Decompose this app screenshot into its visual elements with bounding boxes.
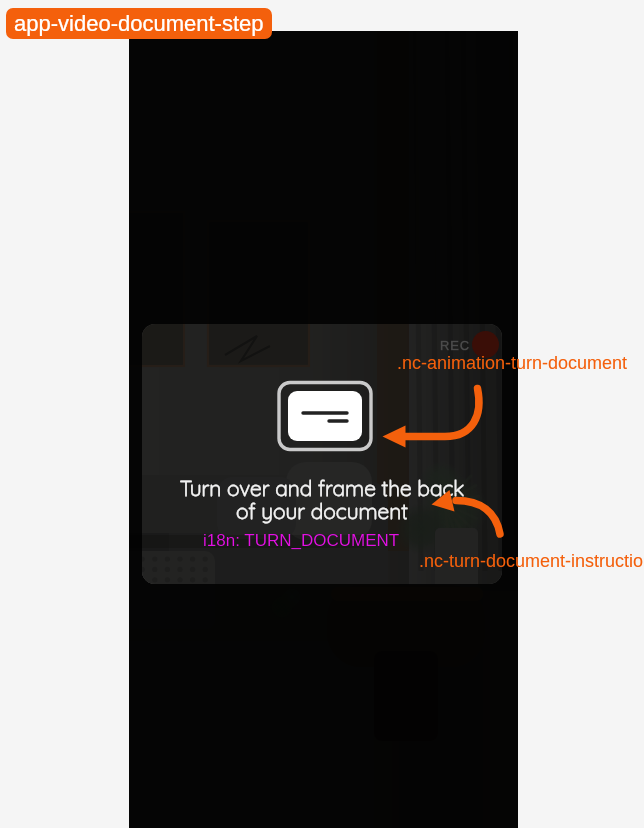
staticText: i18n: TURN_DOCUMENT	[203, 531, 400, 550]
staticText: app-video-document-step	[14, 11, 264, 36]
other: Turn document animation	[277, 380, 373, 452]
button[interactable]: app-video-document-step	[6, 8, 272, 39]
button[interactable]: REC	[142, 324, 502, 584]
staticText: REC	[440, 338, 470, 353]
staticText: .nc-animation-turn-document	[397, 353, 628, 373]
staticText: .nc-turn-document-instruction	[419, 551, 644, 571]
staticText: Turn over and frame the back of your doc…	[142, 475, 502, 525]
